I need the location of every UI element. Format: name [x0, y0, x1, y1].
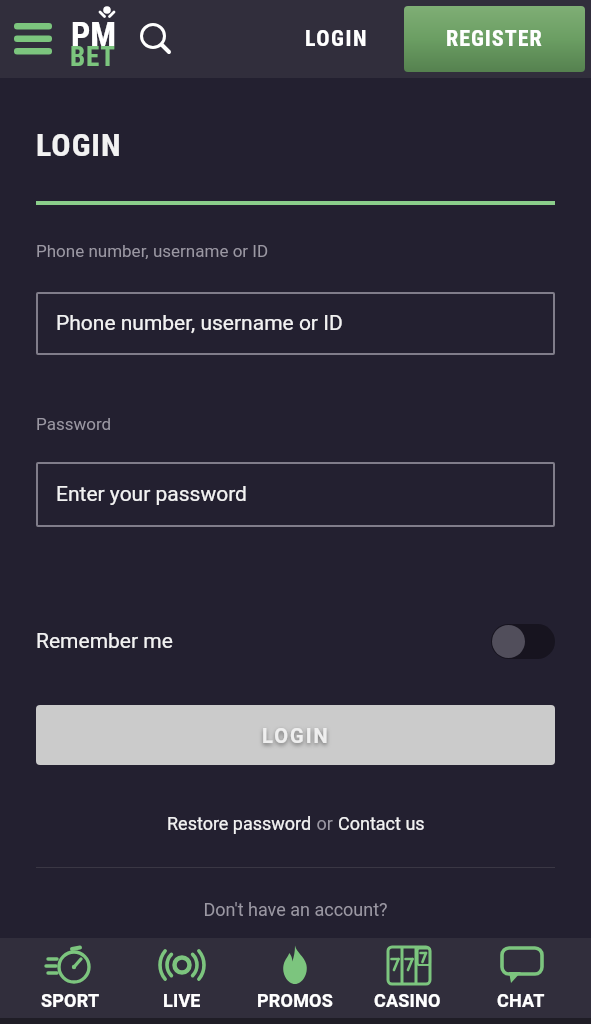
staticText: Restore password: [167, 813, 312, 834]
staticText: Phone number, username or ID: [56, 311, 343, 336]
button[interactable]: Restore password: [167, 813, 312, 834]
button[interactable]: LOGIN: [293, 0, 380, 78]
button[interactable]: CASINO: [351, 938, 464, 1018]
staticText: PM: [71, 14, 117, 54]
staticText: PROMOS: [257, 990, 333, 1011]
staticText: CASINO: [374, 990, 441, 1011]
staticText: LOGIN: [305, 26, 368, 52]
staticText: Remember me: [36, 629, 173, 654]
staticText: CHAT: [497, 990, 545, 1011]
button[interactable]: SPORT: [14, 938, 126, 1018]
staticText: LIVE: [163, 990, 201, 1011]
staticText: Contact us: [338, 813, 425, 834]
staticText: Phone number, username or ID: [36, 241, 269, 261]
staticText: or: [312, 813, 338, 834]
button[interactable]: PROMOS: [238, 938, 351, 1018]
button[interactable]: Contact us: [338, 813, 425, 834]
button[interactable]: [138, 21, 174, 57]
staticText: Password: [36, 414, 112, 434]
staticText: REGISTER: [446, 26, 543, 52]
staticText: BET: [70, 41, 116, 73]
button[interactable]: LIVE: [126, 938, 238, 1018]
button[interactable]: Phone number, username or ID: [36, 292, 555, 355]
button[interactable]: [491, 624, 555, 659]
staticText: SPORT: [41, 990, 100, 1011]
staticText: LOGIN: [36, 126, 122, 164]
button[interactable]: CHAT: [464, 938, 577, 1018]
staticText: LOGIN: [262, 724, 330, 747]
staticText: Don't have an account?: [36, 899, 555, 920]
button[interactable]: Enter your password: [36, 462, 555, 527]
button[interactable]: LOGIN: [36, 705, 555, 765]
staticText: Enter your password: [56, 482, 247, 507]
button[interactable]: REGISTER: [404, 6, 585, 72]
button[interactable]: [14, 20, 52, 58]
button[interactable]: PM: [70, 0, 122, 78]
